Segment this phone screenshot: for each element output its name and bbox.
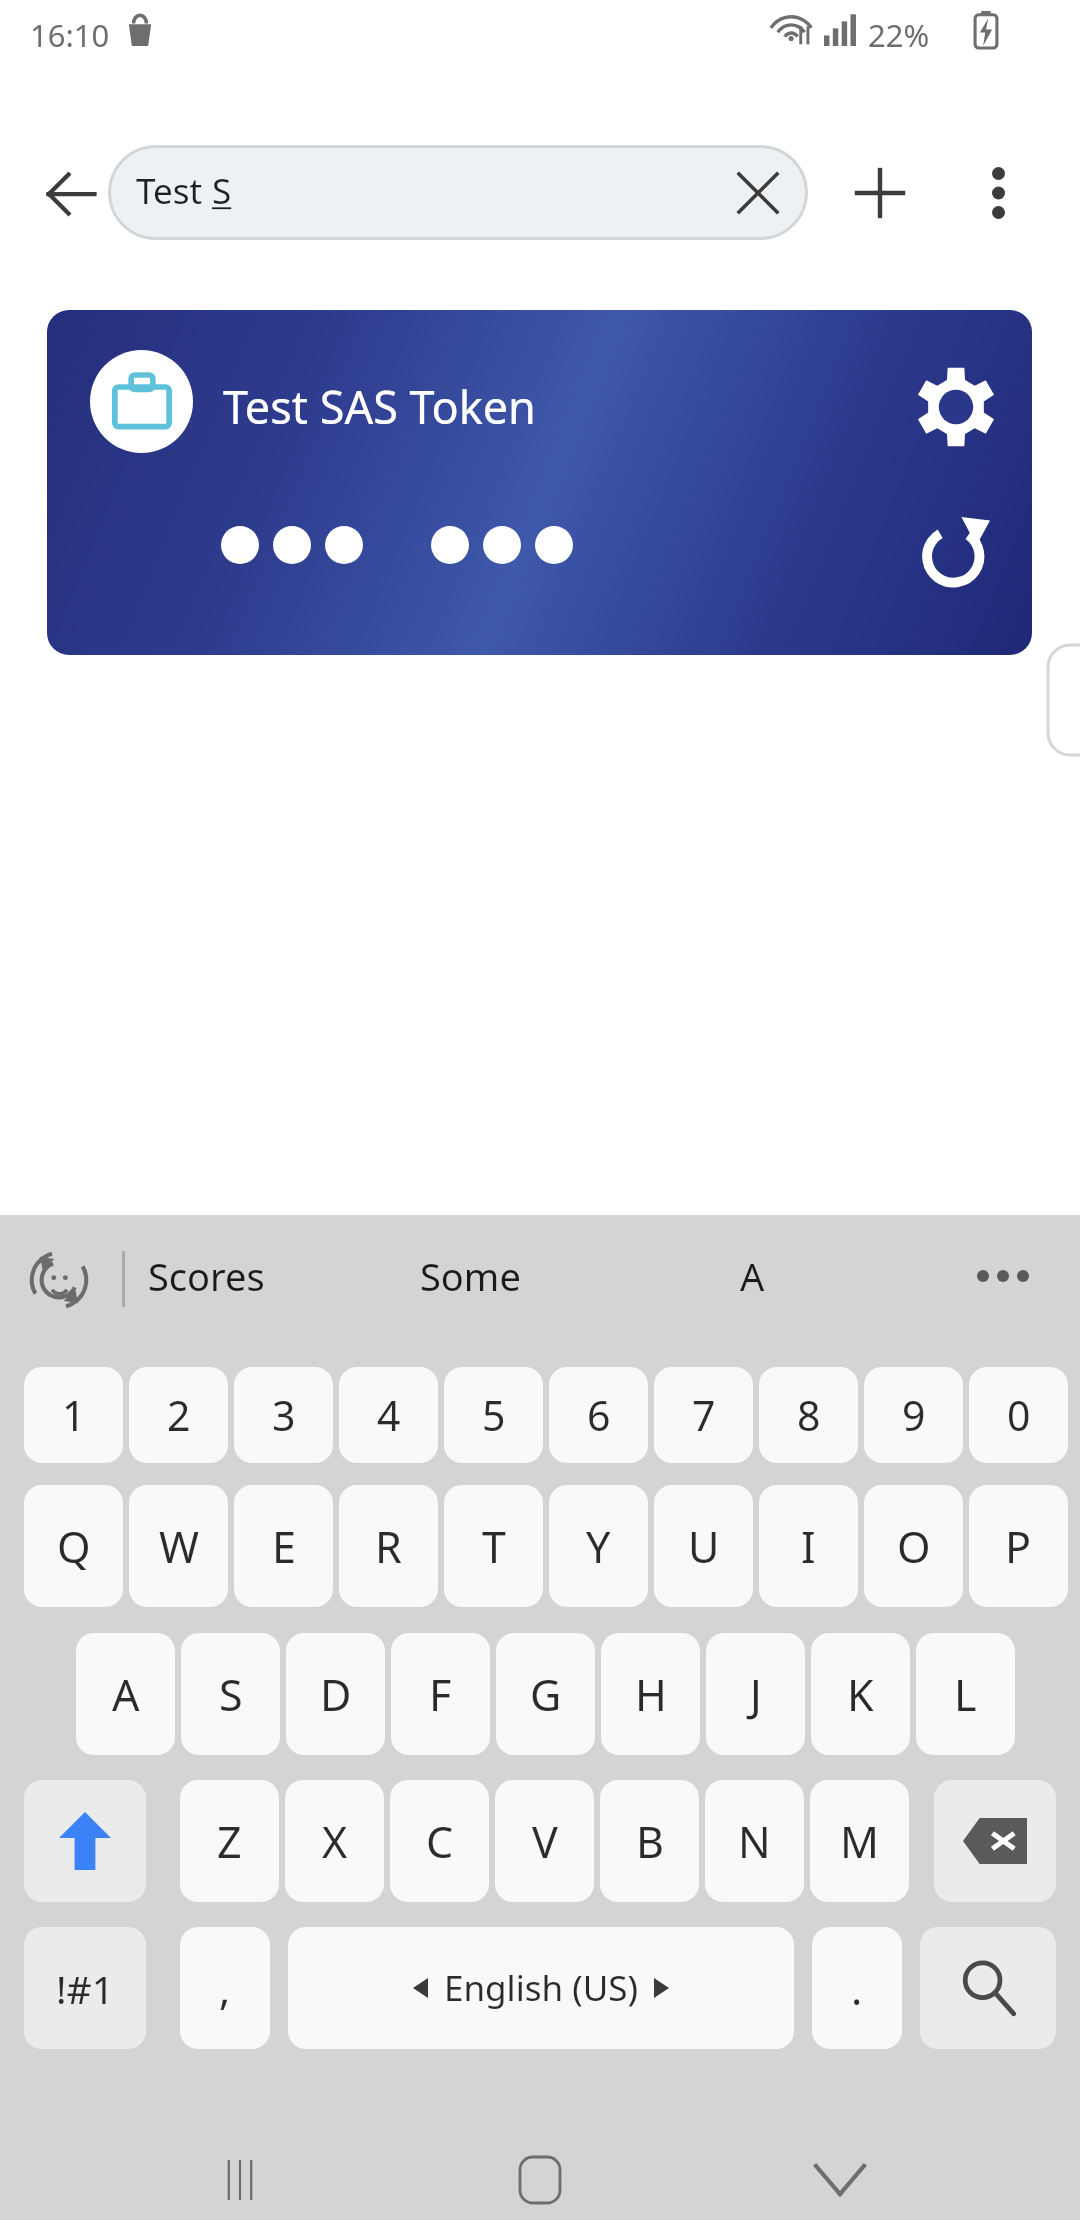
staticText: J xyxy=(750,1665,762,1724)
button[interactable]: 6 xyxy=(549,1367,648,1463)
button[interactable]: Q xyxy=(24,1485,123,1607)
staticText: A xyxy=(740,1250,765,1302)
button[interactable]: Home xyxy=(475,2146,605,2214)
button[interactable]: Add token xyxy=(838,151,922,235)
staticText: T xyxy=(482,1517,506,1576)
button[interactable]: A xyxy=(740,1237,940,1315)
staticText: Test SAS Token xyxy=(223,376,536,437)
staticText: Test xyxy=(136,167,212,215)
button[interactable]: Y xyxy=(549,1485,648,1607)
staticText: , xyxy=(219,1960,231,2017)
button[interactable]: Some xyxy=(420,1237,620,1315)
button[interactable]: 3 xyxy=(234,1367,333,1463)
button[interactable]: Emoji xyxy=(26,1247,92,1313)
button[interactable]: Backspace xyxy=(934,1780,1056,1902)
button[interactable]: M xyxy=(810,1780,909,1902)
staticText: 2 xyxy=(167,1387,191,1443)
staticText: H xyxy=(635,1665,667,1724)
button[interactable]: Back xyxy=(28,151,114,237)
button[interactable]: 0 xyxy=(969,1367,1068,1463)
button[interactable]: U xyxy=(654,1485,753,1607)
staticText: S xyxy=(212,167,232,215)
staticText: . xyxy=(851,1960,863,2017)
button[interactable]: , xyxy=(180,1927,270,2049)
staticText: F xyxy=(429,1665,452,1724)
button[interactable]: Shift xyxy=(24,1780,146,1902)
staticText: 4 xyxy=(377,1387,401,1443)
button[interactable]: I xyxy=(759,1485,858,1607)
staticText: P xyxy=(1005,1517,1032,1576)
button[interactable]: !#1 xyxy=(24,1927,146,2049)
button[interactable]: Clear text xyxy=(722,157,794,229)
staticText: R xyxy=(375,1517,402,1576)
button[interactable]: Test xyxy=(108,145,808,240)
staticText: Y xyxy=(586,1517,611,1576)
staticText: 5 xyxy=(482,1387,506,1443)
staticText: S xyxy=(219,1665,243,1724)
staticText: 0 xyxy=(1007,1387,1031,1443)
button[interactable]: 8 xyxy=(759,1367,858,1463)
button[interactable]: C xyxy=(390,1780,489,1902)
button[interactable]: More suggestions xyxy=(950,1237,1056,1315)
button[interactable]: 5 xyxy=(444,1367,543,1463)
button[interactable]: G xyxy=(496,1633,595,1755)
button[interactable]: Space xyxy=(288,1927,794,2049)
button[interactable]: Test SAS Token xyxy=(47,310,1032,655)
staticText: X xyxy=(322,1812,348,1871)
button[interactable]: E xyxy=(234,1485,333,1607)
staticText: English (US) xyxy=(444,1964,638,2012)
staticText: K xyxy=(847,1665,874,1724)
button[interactable]: Recent apps xyxy=(175,2146,305,2214)
button[interactable]: S xyxy=(181,1633,280,1755)
staticText: D xyxy=(320,1665,352,1724)
staticText: Scores xyxy=(148,1250,265,1302)
button[interactable]: Z xyxy=(180,1780,279,1902)
button[interactable]: A xyxy=(76,1633,175,1755)
staticText: M xyxy=(840,1812,880,1871)
staticText: 7 xyxy=(692,1387,716,1443)
button[interactable]: Search xyxy=(920,1927,1056,2049)
button[interactable]: R xyxy=(339,1485,438,1607)
button[interactable]: P xyxy=(969,1485,1068,1607)
button[interactable]: Scores xyxy=(148,1237,348,1315)
staticText: 22% xyxy=(868,14,930,56)
button[interactable]: K xyxy=(811,1633,910,1755)
button[interactable]: T xyxy=(444,1485,543,1607)
button[interactable]: 2 xyxy=(129,1367,228,1463)
staticText: B xyxy=(636,1812,664,1871)
button[interactable]: V xyxy=(495,1780,594,1902)
button[interactable]: 1 xyxy=(24,1367,123,1463)
staticText: Q xyxy=(57,1517,91,1576)
staticText: N xyxy=(738,1812,771,1871)
button[interactable]: W xyxy=(129,1485,228,1607)
button[interactable]: Refresh xyxy=(903,498,1009,604)
staticText: O xyxy=(897,1517,931,1576)
staticText: G xyxy=(530,1665,562,1724)
button[interactable]: J xyxy=(706,1633,805,1755)
button[interactable]: L xyxy=(916,1633,1015,1755)
button[interactable]: Settings xyxy=(903,354,1009,460)
button[interactable]: X xyxy=(285,1780,384,1902)
staticText: I xyxy=(801,1517,816,1576)
button[interactable]: F xyxy=(391,1633,490,1755)
button[interactable]: H xyxy=(601,1633,700,1755)
staticText: L xyxy=(954,1665,977,1724)
staticText: E xyxy=(272,1517,296,1576)
button[interactable]: B xyxy=(600,1780,699,1902)
button[interactable]: 4 xyxy=(339,1367,438,1463)
button[interactable]: D xyxy=(286,1633,385,1755)
staticText: V xyxy=(532,1812,558,1871)
button[interactable]: More options xyxy=(956,151,1040,235)
button[interactable]: N xyxy=(705,1780,804,1902)
staticText: C xyxy=(426,1812,454,1871)
button[interactable]: O xyxy=(864,1485,963,1607)
staticText: 6 xyxy=(587,1387,611,1443)
staticText: 3 xyxy=(272,1387,296,1443)
button[interactable]: . xyxy=(812,1927,902,2049)
button[interactable]: Hide keyboard xyxy=(775,2146,905,2214)
staticText: Some xyxy=(420,1250,521,1302)
button[interactable]: 9 xyxy=(864,1367,963,1463)
staticText: 1 xyxy=(62,1387,86,1443)
staticText: 8 xyxy=(797,1387,821,1443)
button[interactable]: 7 xyxy=(654,1367,753,1463)
